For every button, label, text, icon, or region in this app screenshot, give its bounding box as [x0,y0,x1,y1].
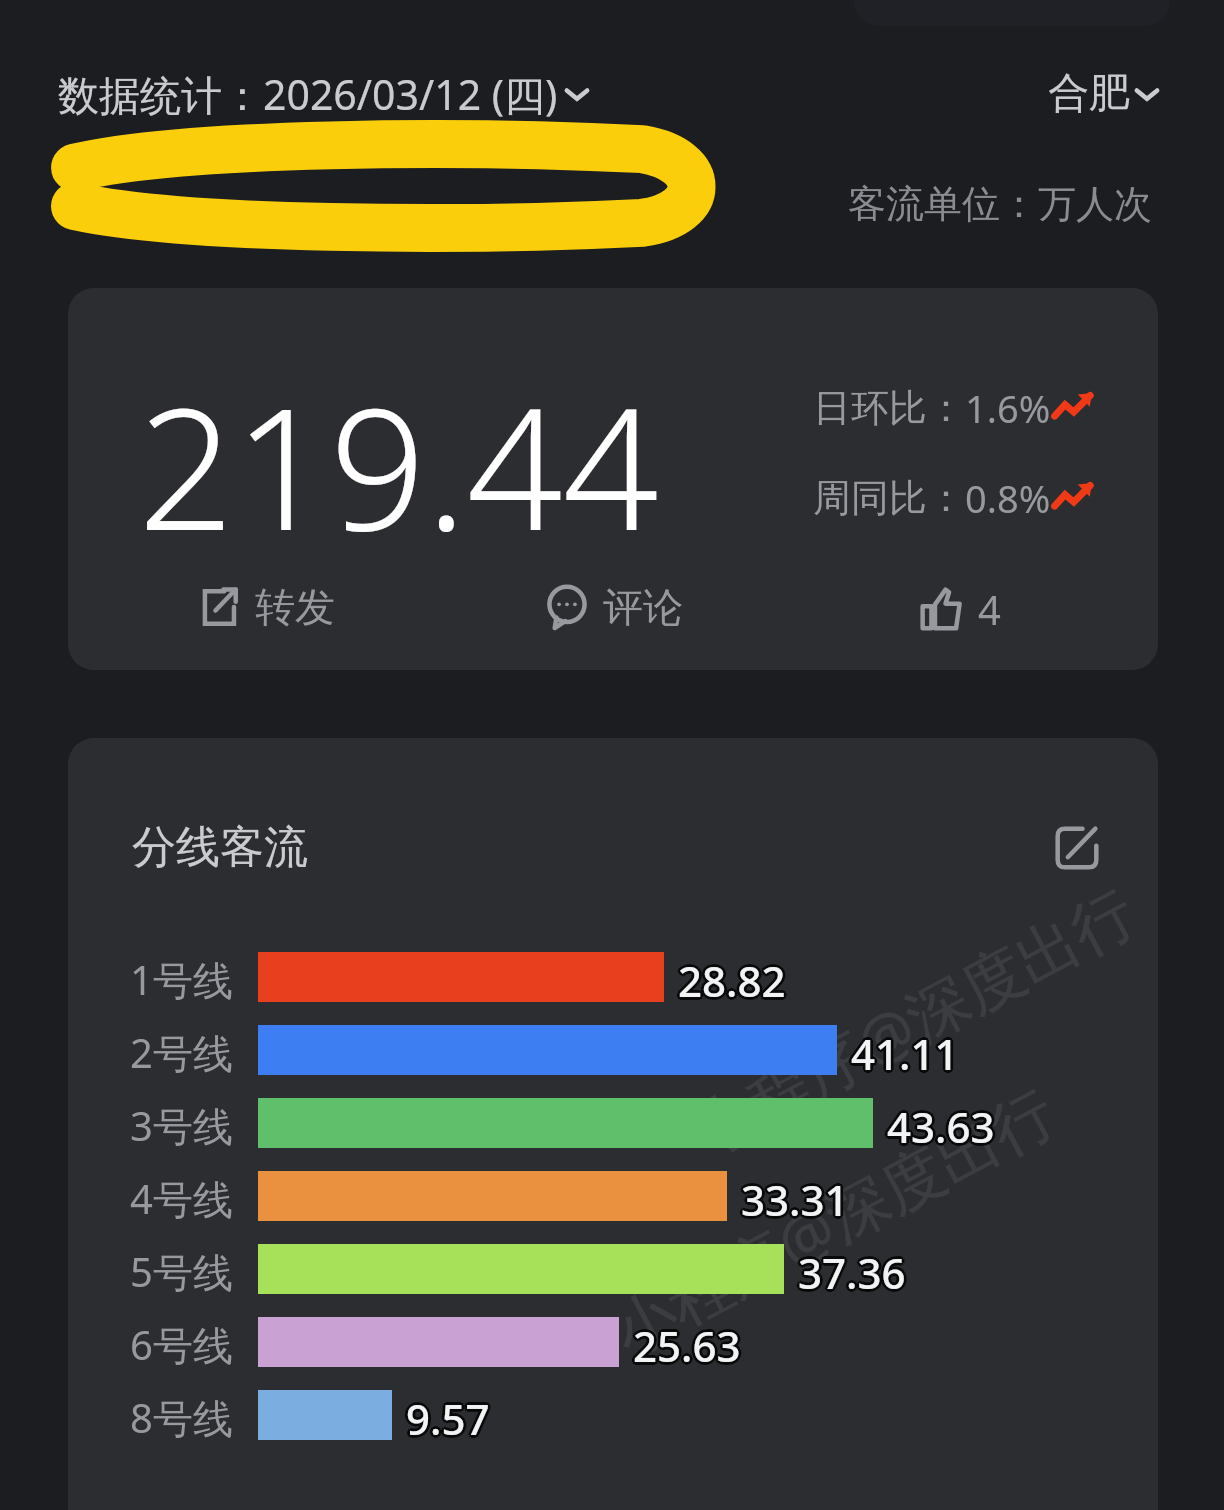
button[interactable]: 合肥 [1048,68,1162,120]
staticText: 9.57 [404,1388,488,1438]
staticText: 日环比： [813,384,965,432]
staticText: 37.36 [796,1242,904,1292]
staticText: 43.63 [890,1098,998,1148]
button[interactable]: 219.44 [68,288,1158,670]
staticText: 4 [978,582,1001,636]
staticText: 25.63 [635,1315,743,1365]
staticText: 33.31 [744,1171,852,1221]
staticText: 41.11 [848,1025,956,1075]
button[interactable]: 数据统计：2026/03/12 (四) [58,66,592,122]
staticText: 合肥 [1048,68,1130,120]
staticText: 43.63 [885,1100,993,1150]
staticText: 3号线 [130,1098,256,1148]
staticText: 43.63 [887,1101,995,1151]
staticText: 33.31 [743,1169,851,1219]
staticText: 37.36 [800,1246,908,1296]
staticText: 41.11 [851,1028,959,1078]
staticText: 25.63 [633,1314,741,1364]
staticText: 43.63 [885,1096,993,1146]
staticText: 37.36 [798,1241,906,1291]
staticText: 9.57 [408,1388,492,1438]
staticText: 33.31 [739,1173,847,1223]
staticText: 1.6% [965,382,1051,434]
staticText: 9.57 [403,1390,487,1440]
staticText: 5号线 [130,1244,256,1294]
staticText: 周同比： [813,474,965,522]
staticText: 转发 [255,582,335,632]
staticText: 25.63 [636,1317,744,1367]
staticText: 25.63 [635,1319,743,1369]
staticText: 28.82 [676,954,784,1004]
staticText: 37.36 [795,1244,903,1294]
staticText: 43.63 [884,1098,992,1148]
staticText: 41.11 [851,1025,959,1075]
staticText: 9.57 [406,1393,490,1443]
staticText: 37.36 [798,1244,906,1294]
staticText: 9.57 [406,1387,490,1437]
staticText: 4号线 [130,1171,256,1221]
staticText: 9.57 [408,1392,492,1442]
staticText: 43.63 [889,1100,997,1150]
staticText: 25.63 [633,1320,741,1370]
staticText: 分线客流 [132,820,308,875]
staticText: 小程序@深度出行 [677,868,1149,1173]
staticText: 9.57 [406,1390,490,1440]
staticText: 41.11 [851,1022,959,1072]
staticText: 28.82 [675,952,783,1002]
staticText: 41.11 [854,1025,962,1075]
staticText: 43.63 [889,1096,997,1146]
staticText: 41.11 [849,1023,957,1073]
staticText: 43.63 [887,1098,995,1148]
button[interactable]: 转发 [92,572,440,642]
staticText: 41.11 [853,1027,961,1077]
staticText: 6号线 [130,1317,256,1367]
staticText: 33.31 [738,1171,846,1221]
staticText: 0.8% [965,472,1051,524]
staticText: 28.82 [680,954,788,1004]
staticText: 2号线 [130,1025,256,1075]
staticText: 33.31 [741,1168,849,1218]
staticText: 28.82 [678,952,786,1002]
staticText: 37.36 [796,1246,904,1296]
staticText: 25.63 [633,1317,741,1367]
staticText: 客流单位：万人次 [848,180,1152,228]
staticText: 28.82 [678,955,786,1005]
staticText: 41.11 [849,1027,957,1077]
staticText: 28.82 [680,950,788,1000]
staticText: 评论 [603,582,683,632]
staticText: 41.11 [853,1023,961,1073]
staticText: 9.57 [409,1390,493,1440]
staticText: 25.63 [631,1319,739,1369]
staticText: 1号线 [130,952,256,1002]
staticText: 33.31 [739,1169,847,1219]
staticText: 小程序@深度出行 [597,1068,1069,1373]
staticText: 43.63 [887,1095,995,1145]
staticText: 33.31 [741,1171,849,1221]
staticText: 9.57 [404,1392,488,1442]
staticText: 28.82 [678,949,786,999]
staticText: 数据统计：2026/03/12 (四) [58,66,558,122]
button[interactable]: 4 [787,572,1134,646]
staticText: 33.31 [743,1173,851,1223]
staticText: 25.63 [630,1317,738,1367]
staticText: 33.31 [741,1174,849,1224]
staticText: 8号线 [130,1390,256,1440]
staticText: 37.36 [800,1242,908,1292]
button[interactable]: Edit [1050,821,1104,875]
staticText: 219.44 [138,350,659,579]
staticText: 25.63 [631,1315,739,1365]
staticText: 28.82 [681,952,789,1002]
button[interactable]: 评论 [440,572,787,642]
staticText: 37.36 [798,1247,906,1297]
staticText: 37.36 [801,1244,909,1294]
staticText: 28.82 [676,950,784,1000]
